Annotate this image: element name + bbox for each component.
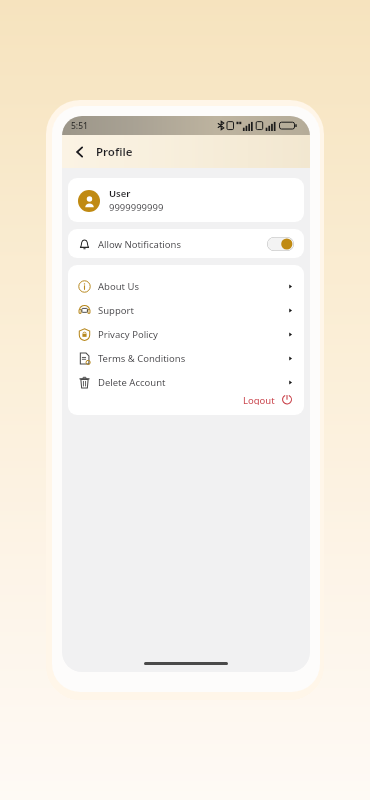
staticText: Support bbox=[98, 304, 134, 317]
button[interactable]: Logout bbox=[243, 394, 293, 405]
staticText: Terms & Conditions bbox=[98, 352, 186, 365]
button[interactable]: User bbox=[68, 178, 304, 222]
button[interactable]: Allow Notifications bbox=[68, 229, 304, 258]
staticText: Delete Account bbox=[98, 376, 166, 389]
button[interactable]: Privacy Policy bbox=[68, 322, 304, 346]
staticText: Profile bbox=[96, 144, 133, 160]
staticText: 5:51 bbox=[71, 120, 88, 132]
button[interactable]: Back bbox=[69, 141, 91, 163]
button[interactable]: Terms & Conditions bbox=[68, 346, 304, 370]
staticText: About Us bbox=[98, 280, 139, 293]
button[interactable]: Delete Account bbox=[68, 370, 304, 394]
staticText: 9999999999 bbox=[109, 201, 164, 214]
staticText: Privacy Policy bbox=[98, 328, 158, 341]
button[interactable]: Allow Notifications toggle bbox=[267, 237, 294, 251]
staticText: User bbox=[109, 187, 131, 200]
staticText: Logout bbox=[243, 394, 275, 405]
button[interactable]: About Us bbox=[68, 274, 304, 298]
staticText: Allow Notifications bbox=[98, 238, 181, 251]
button[interactable]: Support bbox=[68, 298, 304, 322]
